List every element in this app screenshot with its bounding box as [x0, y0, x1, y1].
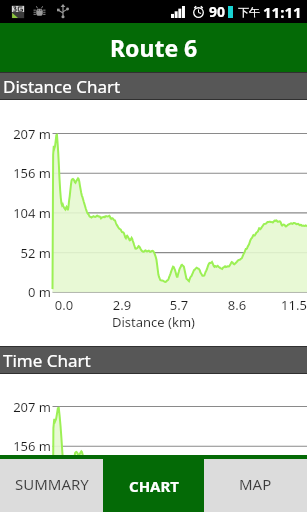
staticText: 52 m: [0, 244, 51, 262]
staticText: 11.5: [272, 296, 307, 314]
staticText: 156 m: [0, 164, 51, 182]
staticText: 5.7: [157, 296, 201, 314]
other: Alarm set: [192, 5, 205, 18]
button[interactable]: SUMMARY: [0, 459, 103, 512]
staticText: 104 m: [0, 204, 51, 222]
staticText: 下午: [238, 5, 260, 19]
staticText: 0 m: [0, 283, 51, 301]
staticText: 0.0: [42, 296, 86, 314]
staticText: Distance Chart: [3, 75, 121, 98]
staticText: 8.6: [215, 296, 259, 314]
other: Signal strength: [171, 6, 185, 18]
staticText: 207 m: [0, 125, 51, 143]
staticText: Route 6: [110, 32, 198, 63]
other: 3G mobile data: [11, 5, 25, 19]
button[interactable]: CHART: [103, 455, 204, 512]
staticText: 11:11: [263, 2, 302, 22]
staticText: CHART: [129, 476, 179, 496]
other: USB connected: [57, 4, 69, 19]
button[interactable]: MAP: [204, 459, 307, 512]
staticText: Distance (km): [0, 313, 307, 331]
staticText: SUMMARY: [15, 474, 89, 494]
button[interactable]: Route 6: [0, 23, 307, 72]
staticText: 207 m: [0, 398, 51, 416]
staticText: Time Chart: [3, 349, 91, 372]
other: USB debugging enabled: [33, 5, 48, 18]
staticText: 90: [209, 2, 226, 21]
staticText: MAP: [239, 474, 272, 494]
staticText: 156 m: [0, 437, 51, 455]
staticText: 2.9: [100, 296, 144, 314]
